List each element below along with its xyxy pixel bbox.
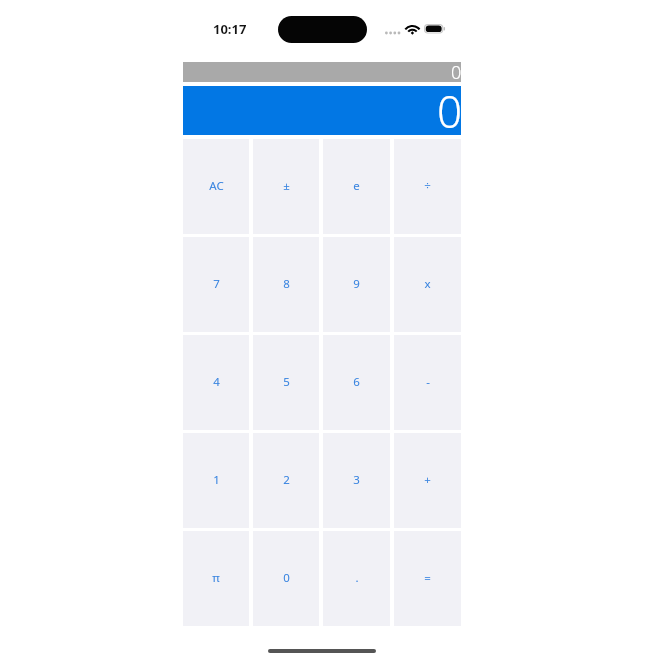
staticText: e	[353, 178, 360, 194]
button[interactable]: =	[394, 531, 461, 626]
button[interactable]: +	[394, 433, 461, 528]
staticText: 0	[437, 81, 463, 130]
staticText: .	[355, 570, 359, 586]
button[interactable]: 2	[253, 433, 319, 528]
staticText: ÷	[424, 178, 431, 194]
button[interactable]: 5	[253, 335, 319, 430]
staticText: 0	[283, 570, 290, 586]
button[interactable]: 0	[253, 531, 319, 626]
button[interactable]: ÷	[394, 139, 461, 234]
staticText: =	[424, 570, 431, 586]
staticText: π	[212, 570, 220, 586]
button[interactable]: 8	[253, 237, 319, 332]
button[interactable]: x	[394, 237, 461, 332]
staticText: 7	[213, 276, 220, 292]
button[interactable]: ±	[253, 139, 319, 234]
other: Cellular signal	[385, 30, 403, 36]
staticText: +	[424, 472, 431, 488]
button[interactable]: -	[394, 335, 461, 430]
button[interactable]: 4	[183, 335, 249, 430]
button[interactable]: 9	[323, 237, 390, 332]
staticText: AC	[209, 178, 224, 194]
button[interactable]: Previous result 0	[183, 62, 461, 82]
staticText: 4	[213, 374, 220, 390]
button[interactable]: 7	[183, 237, 249, 332]
staticText: 8	[283, 276, 290, 292]
staticText: 5	[283, 374, 290, 390]
other: Battery full	[424, 24, 446, 34]
staticText: 2	[283, 472, 290, 488]
button[interactable]: π	[183, 531, 249, 626]
button[interactable]: e	[323, 139, 390, 234]
staticText: ±	[283, 178, 290, 194]
staticText: -	[426, 374, 430, 390]
other: Wi-Fi	[405, 23, 419, 35]
staticText: 3	[353, 472, 360, 488]
button[interactable]: Display 0	[183, 86, 461, 135]
button[interactable]: 6	[323, 335, 390, 430]
staticText: 0	[451, 60, 462, 80]
button[interactable]: 1	[183, 433, 249, 528]
staticText: 1	[213, 472, 220, 488]
staticText: 6	[353, 374, 360, 390]
button[interactable]: AC	[183, 139, 249, 234]
staticText: 9	[353, 276, 360, 292]
staticText: 10:17	[213, 20, 247, 38]
staticText: x	[424, 276, 431, 292]
button[interactable]: 3	[323, 433, 390, 528]
